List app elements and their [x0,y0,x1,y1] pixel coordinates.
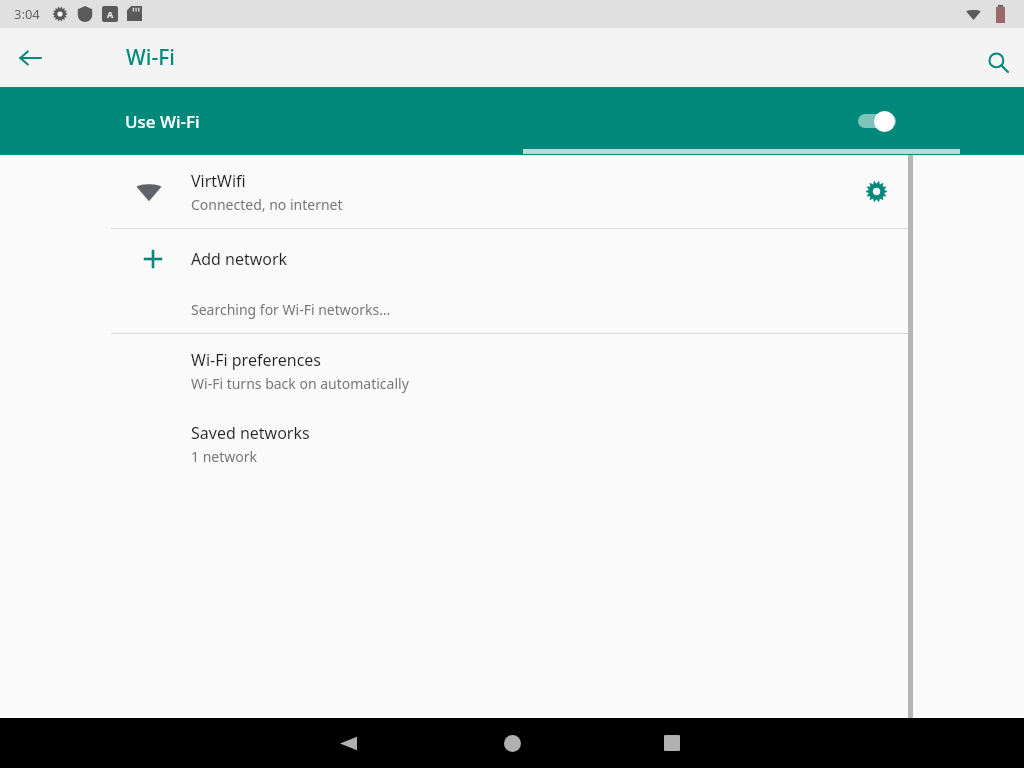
button[interactable]: VirtWifi [0,155,1024,228]
button[interactable]: Back [318,718,378,768]
button[interactable]: Wi-Fi preferences [0,334,1024,407]
staticText: Saved networks [191,422,310,444]
staticText: 3:04 [14,5,40,23]
staticText: Use Wi-Fi [125,110,200,133]
button[interactable]: Home [482,718,542,768]
button[interactable]: Recent apps [642,718,702,768]
staticText: Wi-Fi preferences [191,349,322,371]
button[interactable]: Network settings [852,155,900,228]
staticText: Wi-Fi [126,43,175,72]
staticText: Searching for Wi-Fi networks… [191,300,391,319]
staticText: 1 network [191,447,257,466]
button[interactable]: Saved networks [0,407,1024,480]
staticText: Add network [191,248,288,270]
staticText: A [107,8,114,20]
button[interactable]: Use Wi-Fi [0,87,1024,155]
staticText: Wi-Fi turns back on automatically [191,374,409,393]
staticText: Connected, no internet [191,195,343,214]
button[interactable]: Back [8,36,52,80]
staticText: VirtWifi [191,170,246,192]
button[interactable]: Add network [0,229,1024,289]
button[interactable]: Search [977,41,1019,83]
